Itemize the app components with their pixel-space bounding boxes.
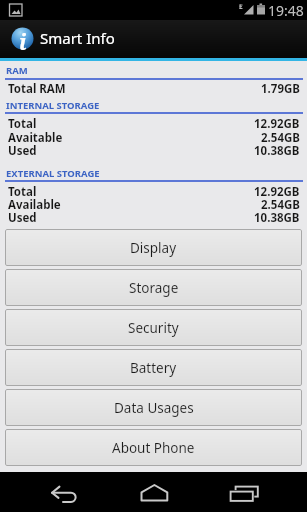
staticText: Data Usages <box>114 399 194 417</box>
button[interactable] <box>131 476 176 508</box>
staticText: Available <box>8 197 61 211</box>
button[interactable] <box>220 476 265 508</box>
staticText: INTERNAL STORAGE <box>6 99 100 112</box>
staticText: Avaitable <box>8 130 63 144</box>
button[interactable]: Battery <box>5 349 302 386</box>
staticText: 1.79GB <box>261 81 300 95</box>
staticText: Used <box>8 210 37 224</box>
staticText: 19:48 <box>268 1 304 20</box>
staticText: Smart Info <box>40 28 115 48</box>
staticText: Used <box>8 143 37 157</box>
staticText: Total <box>8 116 37 130</box>
staticText: Storage <box>129 279 179 297</box>
staticText: 10.38GB <box>254 143 300 157</box>
staticText: 10.38GB <box>254 210 300 224</box>
staticText: 12.92GB <box>254 184 300 198</box>
staticText: About Phone <box>112 439 195 457</box>
staticText: 2.54GB <box>261 130 300 144</box>
staticText: Display <box>130 239 177 257</box>
button[interactable]: Display <box>5 229 302 266</box>
staticText: Total <box>8 184 37 198</box>
staticText: Battery <box>130 359 177 377</box>
staticText: RAM <box>6 64 28 77</box>
staticText: 12.92GB <box>254 116 300 130</box>
staticText: EXTERNAL STORAGE <box>6 167 100 180</box>
button[interactable]: Security <box>5 309 302 346</box>
staticText: Total RAM <box>8 81 66 95</box>
button[interactable] <box>39 476 84 508</box>
button[interactable]: Storage <box>5 269 302 306</box>
button[interactable]: Data Usages <box>5 389 302 426</box>
button[interactable]: About Phone <box>5 429 302 466</box>
staticText: Security <box>128 319 179 337</box>
staticText: 2.54GB <box>261 197 300 211</box>
staticText: i <box>19 28 27 50</box>
